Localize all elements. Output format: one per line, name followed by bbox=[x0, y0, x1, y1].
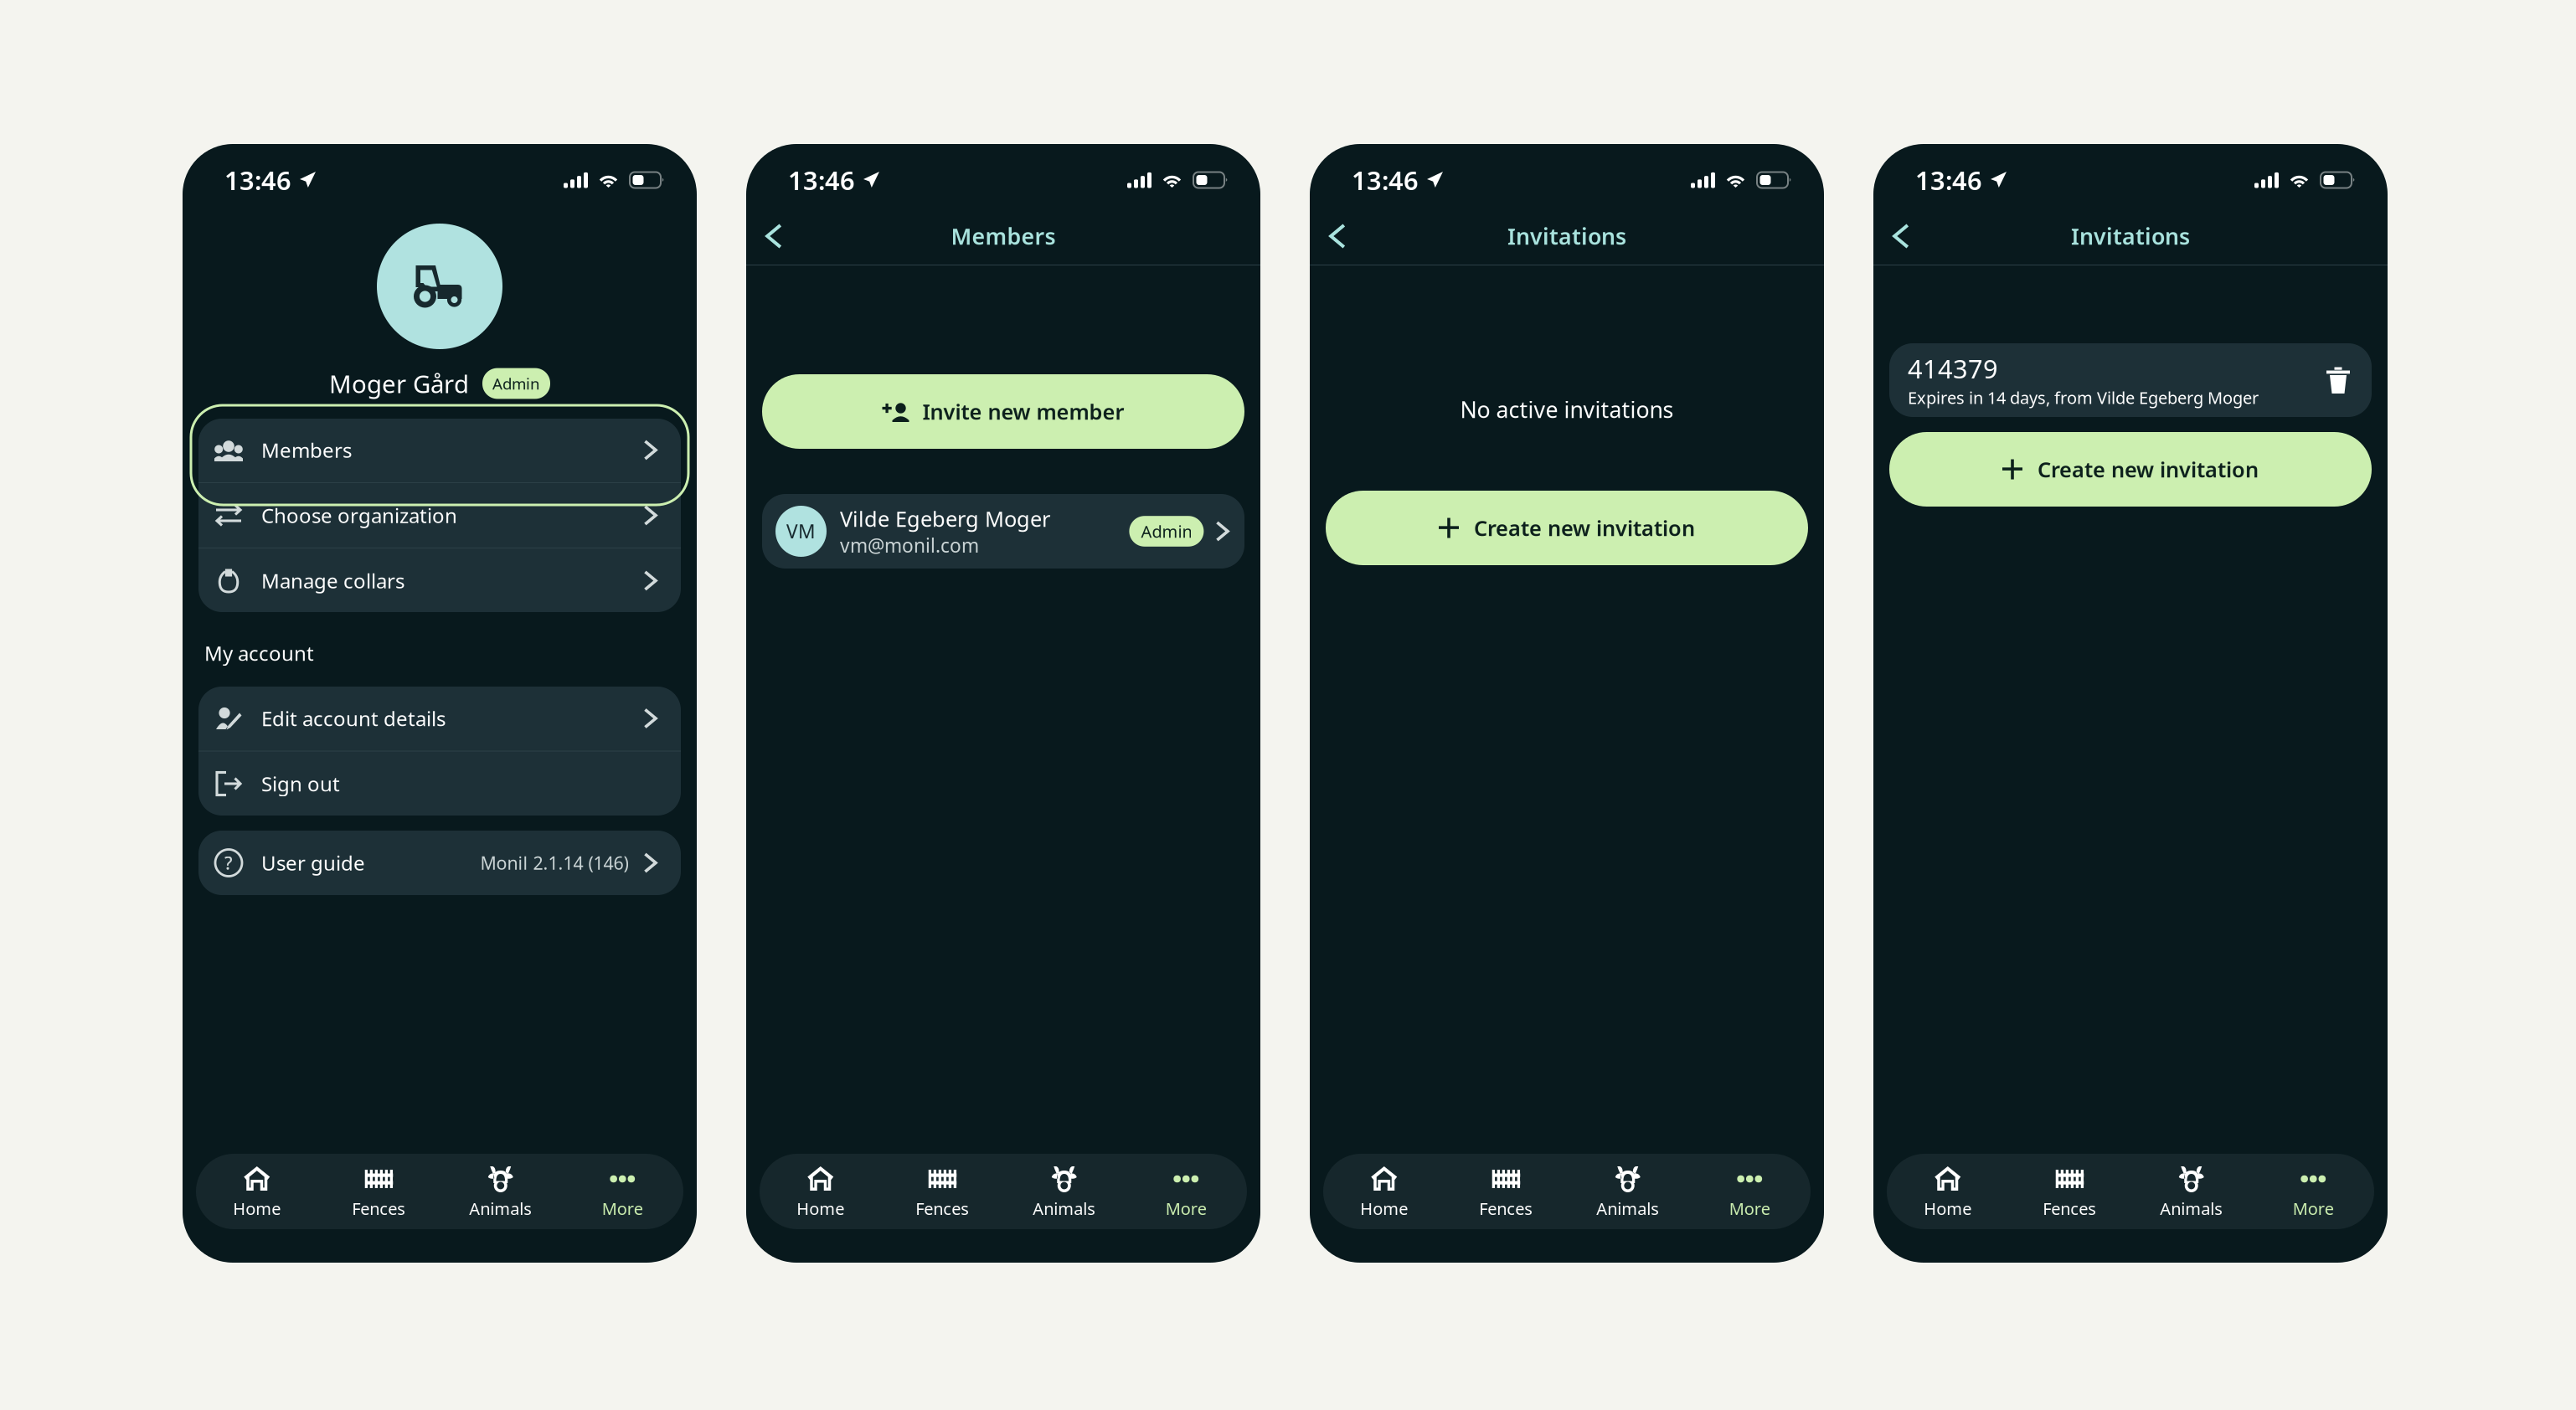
staticText: More bbox=[602, 1197, 643, 1220]
staticText: Monil 2.1.14 (146) bbox=[480, 851, 628, 875]
button[interactable]: Home bbox=[196, 1154, 318, 1229]
button[interactable]: Manage collars bbox=[198, 548, 681, 613]
button[interactable]: Fences bbox=[2009, 1154, 2130, 1229]
button[interactable]: Back bbox=[1315, 213, 1360, 260]
staticText: Create new invitation bbox=[2038, 455, 2259, 483]
button[interactable]: Back bbox=[751, 213, 796, 260]
staticText: Choose organization bbox=[261, 502, 457, 529]
button[interactable]: More bbox=[2252, 1154, 2374, 1229]
staticText: Expires in 14 days, from Vilde Egeberg M… bbox=[1908, 386, 2259, 409]
staticText: No active invitations bbox=[1460, 395, 1674, 424]
button[interactable]: Members bbox=[198, 418, 681, 482]
staticText: User guide bbox=[261, 850, 365, 876]
button[interactable]: Choose organization bbox=[198, 483, 681, 548]
staticText: Animals bbox=[1033, 1197, 1096, 1220]
staticText: Animals bbox=[1596, 1197, 1659, 1220]
staticText: 414379 bbox=[1908, 352, 1998, 386]
staticText: Invitations bbox=[2071, 221, 2190, 251]
button[interactable]: ? bbox=[198, 831, 681, 895]
staticText: Members bbox=[261, 437, 352, 463]
button[interactable]: Sign out bbox=[198, 751, 681, 816]
staticText: Home bbox=[1360, 1197, 1408, 1220]
staticText: ? bbox=[224, 851, 233, 875]
button[interactable]: Fences bbox=[1445, 1154, 1567, 1229]
staticText: More bbox=[1166, 1197, 1207, 1220]
button[interactable]: Animals bbox=[1003, 1154, 1125, 1229]
button[interactable]: Home bbox=[760, 1154, 881, 1229]
button[interactable]: Animals bbox=[1567, 1154, 1689, 1229]
button[interactable]: Animals bbox=[2130, 1154, 2252, 1229]
button[interactable]: Edit account details bbox=[198, 686, 681, 751]
staticText: Invite new member bbox=[922, 397, 1124, 426]
staticText: Admin bbox=[1141, 520, 1192, 542]
staticText: Fences bbox=[1479, 1197, 1533, 1220]
staticText: Fences bbox=[2043, 1197, 2096, 1220]
staticText: 13:46 bbox=[1915, 163, 1982, 197]
button[interactable]: Create new invitation bbox=[1326, 491, 1808, 565]
button[interactable]: VM bbox=[762, 494, 1244, 569]
staticText: 13:46 bbox=[1352, 163, 1419, 197]
button[interactable]: Back bbox=[1878, 213, 1924, 260]
button[interactable]: More bbox=[1689, 1154, 1811, 1229]
button[interactable]: Fences bbox=[318, 1154, 440, 1229]
button[interactable]: Animals bbox=[440, 1154, 562, 1229]
button[interactable]: Create new invitation bbox=[1889, 432, 2372, 507]
staticText: Vilde Egeberg Moger bbox=[840, 505, 1050, 533]
button[interactable]: More bbox=[1125, 1154, 1247, 1229]
staticText: Manage collars bbox=[261, 567, 404, 594]
staticText: Invitations bbox=[1507, 221, 1626, 251]
staticText: Home bbox=[233, 1197, 281, 1220]
staticText: 13:46 bbox=[788, 163, 855, 197]
staticText: Create new invitation bbox=[1474, 514, 1695, 542]
staticText: Moger Gård bbox=[329, 367, 469, 400]
button[interactable]: Fences bbox=[881, 1154, 1003, 1229]
staticText: 13:46 bbox=[224, 163, 291, 197]
staticText: Animals bbox=[2160, 1197, 2223, 1220]
button[interactable]: Home bbox=[1323, 1154, 1445, 1229]
button[interactable]: Delete invitation bbox=[2320, 359, 2357, 401]
button[interactable]: Home bbox=[1887, 1154, 2009, 1229]
button[interactable]: More bbox=[562, 1154, 683, 1229]
staticText: More bbox=[2293, 1197, 2334, 1220]
staticText: Edit account details bbox=[261, 705, 446, 732]
staticText: vm@monil.com bbox=[840, 533, 979, 558]
staticText: Home bbox=[1924, 1197, 1972, 1220]
staticText: Fences bbox=[916, 1197, 969, 1220]
staticText: VM bbox=[786, 519, 816, 544]
staticText: My account bbox=[204, 640, 314, 666]
staticText: Fences bbox=[352, 1197, 405, 1220]
staticText: Home bbox=[797, 1197, 844, 1220]
staticText: Members bbox=[951, 221, 1056, 251]
staticText: More bbox=[1729, 1197, 1770, 1220]
staticText: Admin bbox=[492, 373, 540, 394]
button[interactable]: Invite new member bbox=[762, 374, 1244, 449]
staticText: Animals bbox=[469, 1197, 532, 1220]
staticText: Sign out bbox=[261, 770, 340, 797]
